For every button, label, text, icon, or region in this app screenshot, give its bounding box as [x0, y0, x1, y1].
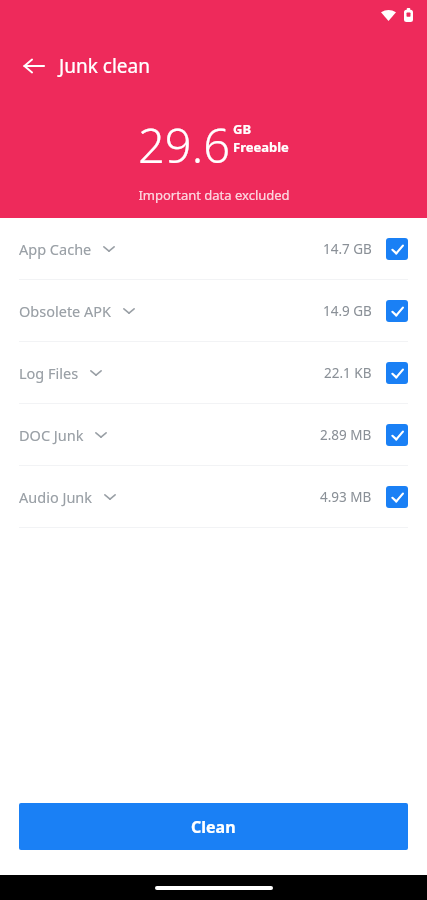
button[interactable]: Toggle selection [386, 486, 408, 508]
staticText: 29.6 [138, 113, 230, 177]
staticText: 22.1 KB [324, 364, 372, 382]
button[interactable]: Toggle selection [386, 300, 408, 322]
button[interactable]: App Cache [0, 218, 427, 279]
staticText: DOC Junk [19, 425, 84, 445]
staticText: 2.89 MB [320, 426, 372, 444]
button[interactable]: DOC Junk [0, 404, 427, 465]
staticText: 14.7 GB [323, 240, 372, 258]
staticText: Log Files [19, 363, 79, 383]
staticText: GB [233, 120, 252, 138]
button[interactable]: Toggle selection [386, 424, 408, 446]
button[interactable]: Log Files [0, 342, 427, 403]
staticText: Obsolete APK [19, 301, 112, 321]
staticText: Important data excluded [138, 186, 290, 204]
button[interactable]: Back [14, 46, 54, 86]
staticText: 4.93 MB [320, 488, 372, 506]
button[interactable]: Toggle selection [386, 362, 408, 384]
staticText: Freeable [233, 138, 289, 156]
staticText: 14.9 GB [323, 302, 372, 320]
button[interactable]: Audio Junk [0, 466, 427, 527]
button[interactable]: Toggle selection [386, 238, 408, 260]
staticText: Audio Junk [19, 487, 93, 507]
button[interactable]: Clean [19, 803, 408, 850]
button[interactable]: Obsolete APK [0, 280, 427, 341]
staticText: Junk clean [59, 53, 150, 79]
staticText: Clean [191, 816, 236, 838]
staticText: App Cache [19, 239, 92, 259]
